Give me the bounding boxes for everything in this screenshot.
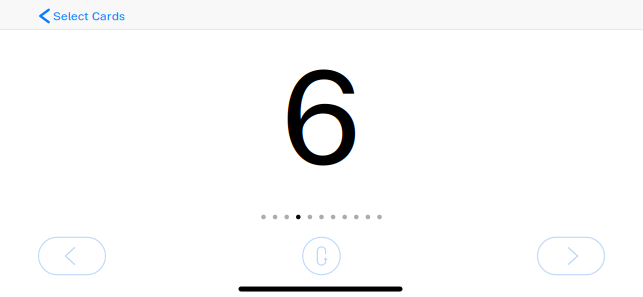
staticText: Select Cards <box>53 9 125 23</box>
staticText: 6 <box>281 43 361 193</box>
button[interactable]: Select Cards <box>33 1 132 31</box>
button[interactable]: Next card <box>537 237 604 275</box>
button[interactable]: Previous card <box>38 237 105 275</box>
button[interactable]: Flip card <box>303 237 340 275</box>
